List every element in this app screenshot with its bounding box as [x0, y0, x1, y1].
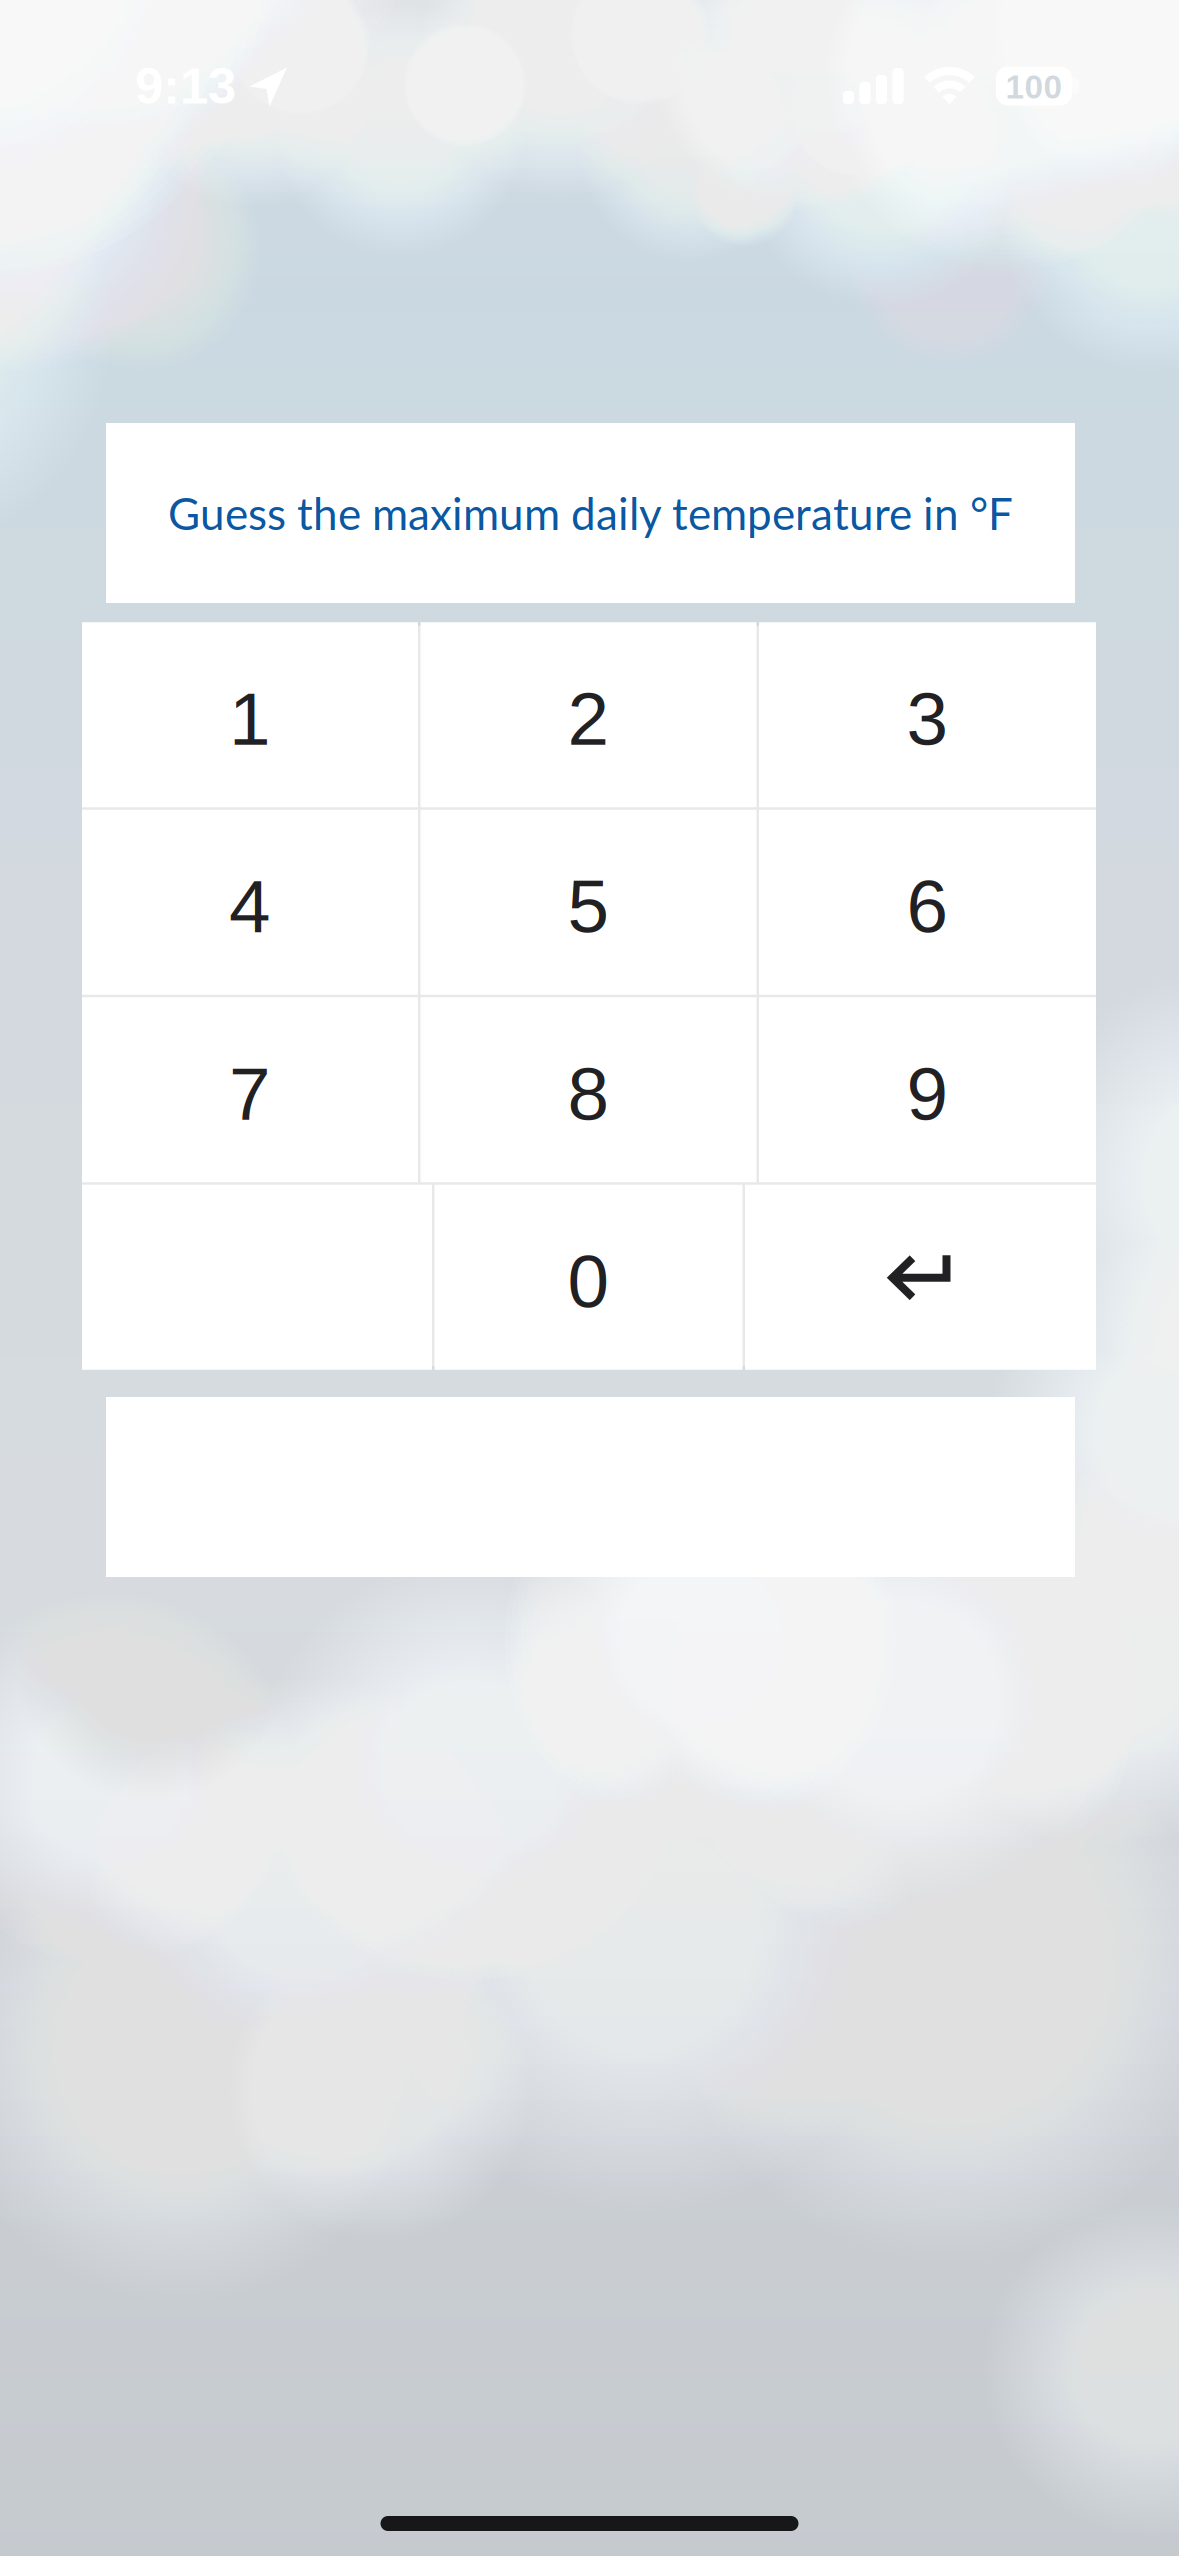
staticText: 4 — [229, 864, 271, 948]
staticText: 9 — [906, 1052, 948, 1135]
button[interactable]: 7 — [82, 997, 418, 1182]
staticText: 9:13 — [135, 58, 236, 114]
button[interactable]: 8 — [420, 997, 756, 1182]
staticText: 3 — [906, 677, 948, 760]
staticText: 8 — [567, 1052, 609, 1135]
staticText: 7 — [229, 1052, 271, 1135]
button[interactable]: 9 — [759, 997, 1096, 1182]
staticText: 0 — [567, 1239, 609, 1323]
button[interactable]: 2 — [420, 622, 756, 807]
staticText: 5 — [567, 864, 609, 948]
staticText: 1 — [229, 677, 271, 760]
staticText: 2 — [567, 677, 609, 760]
staticText: Guess the maximum daily temperature in °… — [168, 487, 1013, 539]
staticText: 6 — [906, 864, 948, 948]
button[interactable]: 0 — [434, 1185, 742, 1370]
staticText: 100 — [1005, 68, 1062, 106]
button[interactable]: 1 — [82, 622, 418, 807]
button[interactable]: 6 — [759, 810, 1096, 995]
button[interactable]: Submit answer — [745, 1185, 1096, 1370]
button[interactable]: 4 — [82, 810, 418, 995]
button[interactable]: 3 — [759, 622, 1096, 807]
button[interactable]: 5 — [420, 810, 756, 995]
